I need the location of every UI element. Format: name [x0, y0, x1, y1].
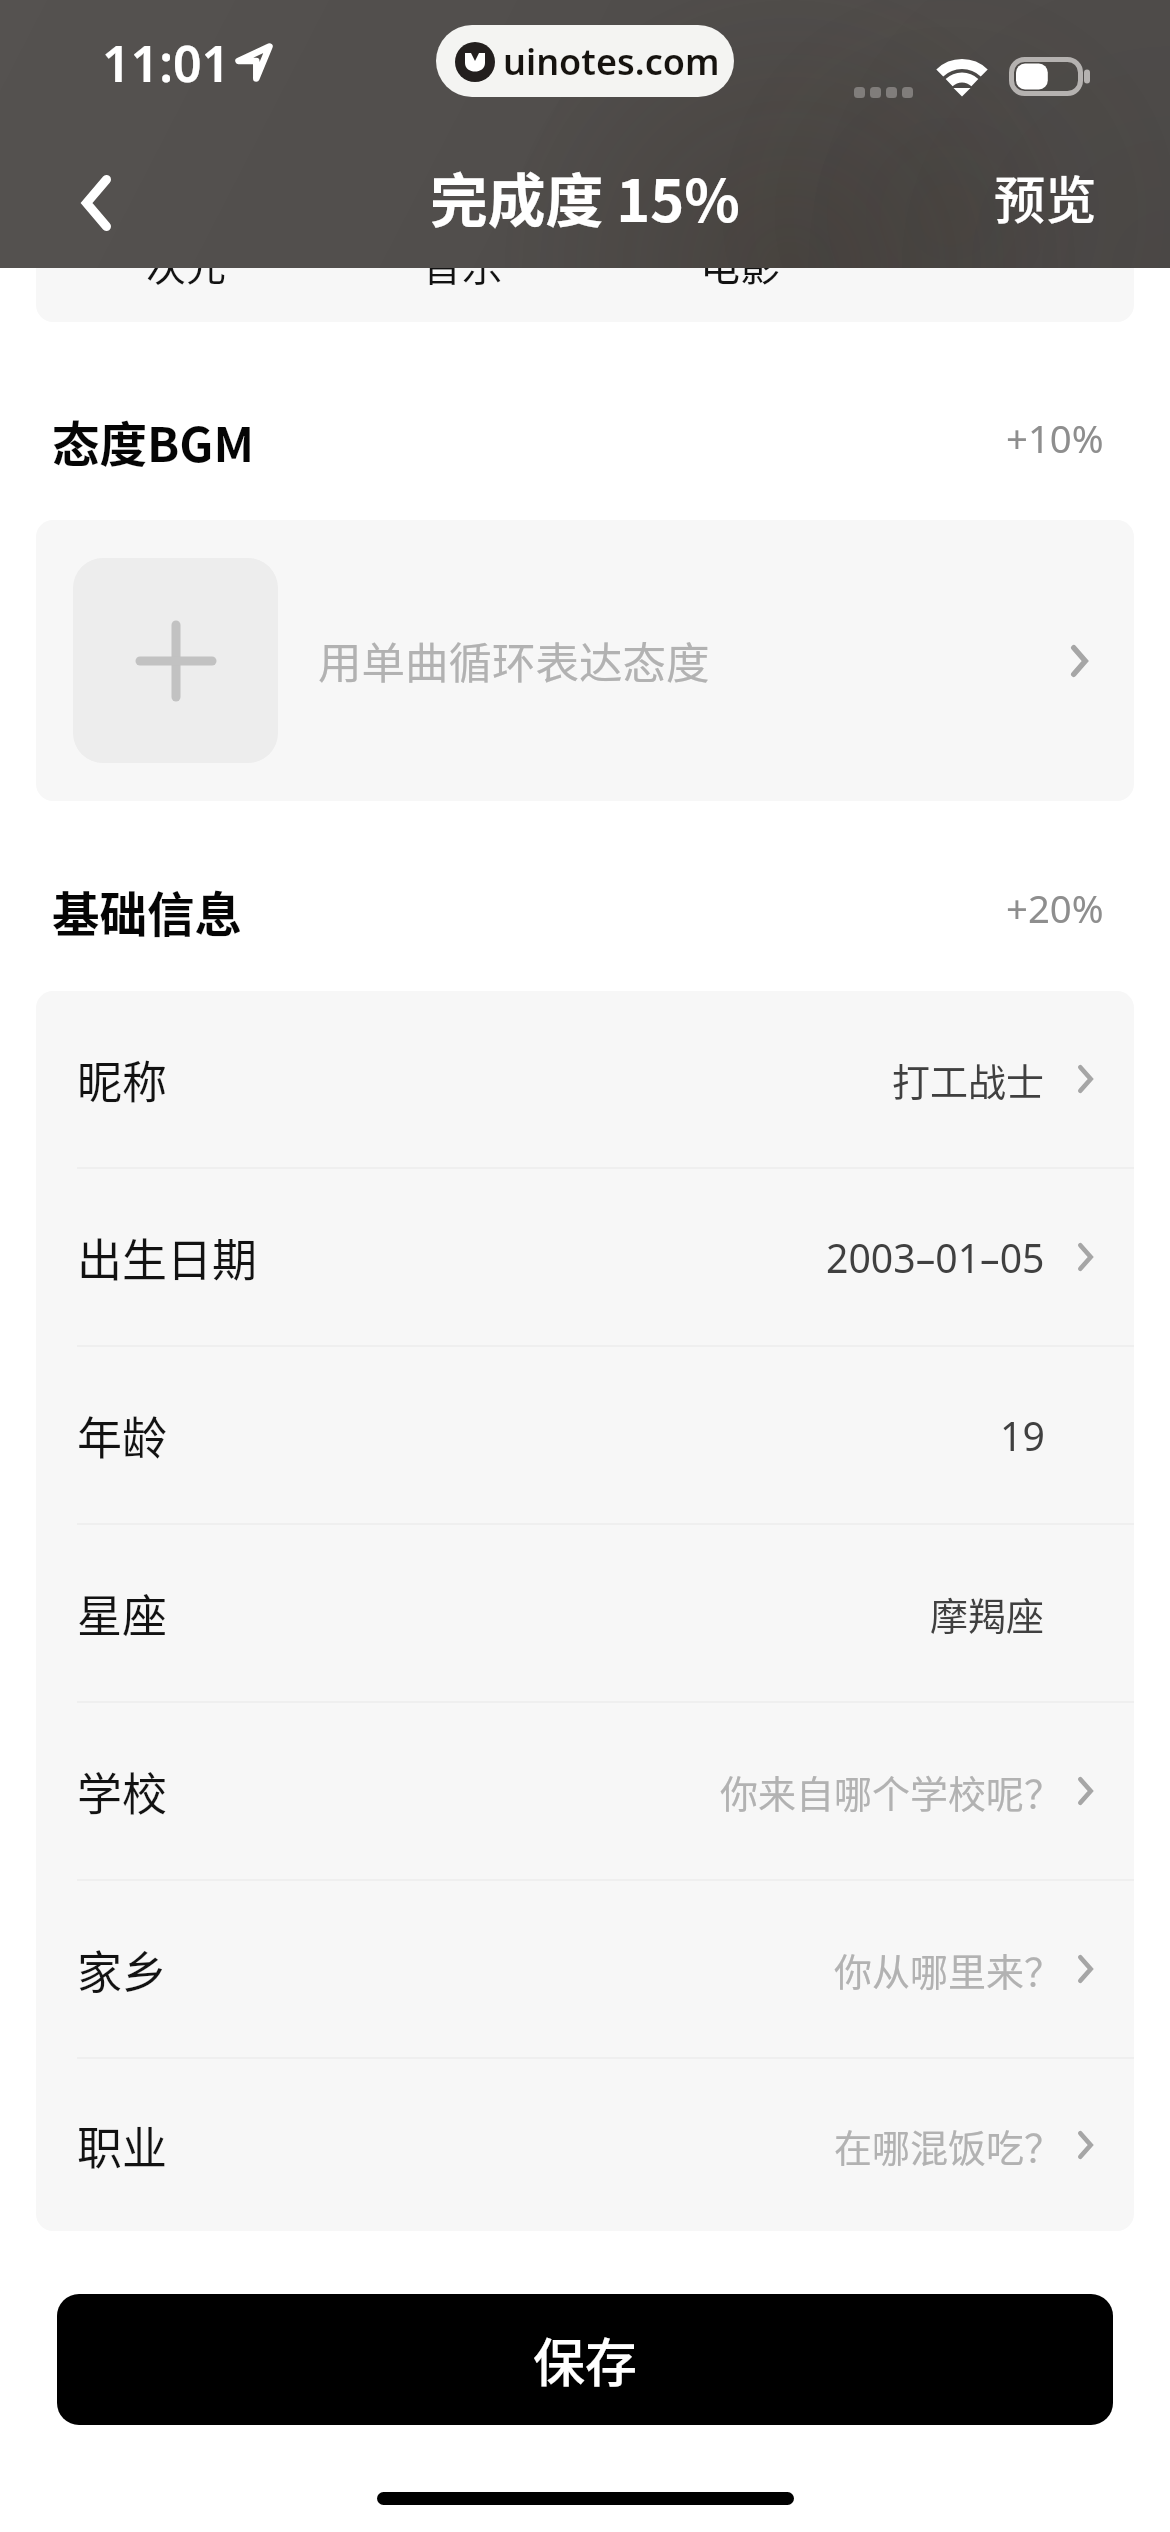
button[interactable]: 音乐 [388, 196, 536, 296]
staticText: +10% [1006, 412, 1104, 464]
button[interactable]: 家乡 [36, 1881, 1134, 2057]
staticText: 星座 [77, 1581, 168, 1646]
staticText: 打工战士 [892, 1052, 1045, 1107]
staticText: 用单曲循环表达态度 [318, 629, 710, 692]
button[interactable]: 星座 [36, 1525, 1134, 1701]
button[interactable]: 年龄 [36, 1347, 1134, 1523]
button[interactable]: Back [31, 144, 161, 262]
staticText: 出生日期 [77, 1225, 258, 1290]
button[interactable]: 职业 [36, 2059, 1134, 2231]
staticText: 年龄 [77, 1403, 168, 1468]
staticText: 电影 [700, 235, 780, 293]
button[interactable]: 电影 [666, 196, 814, 296]
staticText: 职业 [77, 2113, 168, 2178]
staticText: 你来自哪个学校呢？ [720, 1764, 1063, 1819]
button[interactable]: 保存 [57, 2294, 1113, 2425]
staticText: 昵称 [77, 1047, 168, 1112]
button[interactable]: 出生日期 [36, 1169, 1134, 1345]
button[interactable]: 预览 [994, 144, 1097, 262]
staticText: 2003–01–05 [826, 1231, 1045, 1284]
staticText: 预览 [994, 160, 1097, 234]
staticText: uinotes.com [503, 37, 720, 86]
staticText: 保存 [533, 2322, 638, 2397]
staticText: 学校 [77, 1759, 168, 1824]
staticText: 家乡 [77, 1937, 168, 2002]
staticText: 在哪混饭吃？ [834, 2118, 1063, 2173]
staticText: 音乐 [422, 235, 502, 293]
staticText: 摩羯座 [930, 1586, 1045, 1641]
button[interactable]: 次元 [112, 196, 260, 296]
staticText: 你从哪里来？ [834, 1942, 1063, 1997]
button[interactable]: 学校 [36, 1703, 1134, 1879]
staticText: 19 [1000, 1409, 1045, 1462]
staticText: +20% [1006, 882, 1104, 934]
button[interactable]: 昵称 [36, 991, 1134, 1167]
staticText: 11:01 [102, 29, 231, 97]
staticText: 态度BGM [52, 407, 254, 469]
button[interactable]: 用单曲循环表达态度 [36, 520, 1134, 801]
staticText: 基础信息 [52, 877, 242, 939]
staticText: 次元 [146, 235, 226, 293]
staticText: 完成度 15% [430, 155, 740, 239]
